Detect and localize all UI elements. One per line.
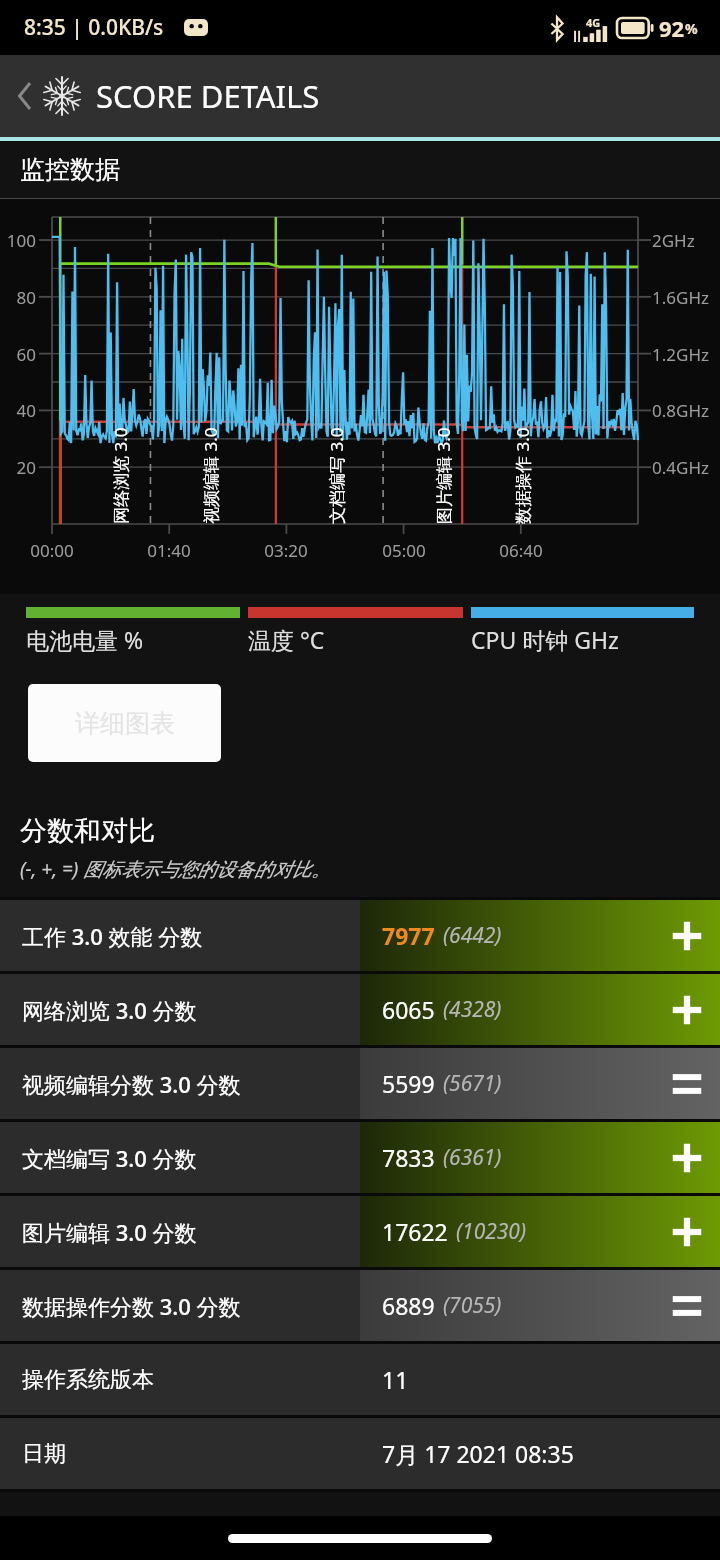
- staticText: 温度 °C: [248, 624, 471, 655]
- staticText: (4328): [443, 995, 502, 1024]
- staticText: 操作系统版本: [22, 1366, 154, 1394]
- staticText: 03:20: [256, 539, 316, 562]
- staticText: 分数和对比: [20, 814, 155, 848]
- staticText: 2GHz: [652, 229, 695, 252]
- staticText: 图片编辑 3.0 分数: [22, 1217, 197, 1247]
- staticText: 电池电量 %: [26, 624, 248, 655]
- staticText: 7977: [382, 920, 435, 951]
- staticText: CPU 时钟 GHz: [471, 624, 694, 655]
- staticText: 7月 17 2021 08:35: [382, 1438, 574, 1469]
- staticText: 文档编写 3.0 分数: [22, 1143, 197, 1173]
- staticText: 60: [0, 343, 36, 366]
- button[interactable]: 图片编辑 3.0 分数: [0, 1196, 720, 1270]
- button[interactable]: 视频编辑分数 3.0 分数: [0, 1048, 720, 1122]
- staticText: 0.8GHz: [652, 399, 709, 422]
- staticText: 05:00: [374, 539, 434, 562]
- staticText: 视频编辑 3.0: [199, 427, 222, 524]
- staticText: 8:35 | 0.0KB/s: [24, 13, 164, 42]
- staticText: 6065: [382, 994, 435, 1025]
- staticText: 日期: [22, 1440, 66, 1468]
- staticText: (6442): [443, 921, 502, 950]
- button[interactable]: 日期: [0, 1418, 720, 1492]
- staticText: 网络浏览 3.0 分数: [22, 995, 197, 1025]
- staticText: 图片编辑 3.0: [432, 427, 455, 524]
- staticText: 监控数据: [20, 154, 120, 185]
- staticText: (6361): [443, 1143, 502, 1172]
- staticText: 17622: [382, 1216, 448, 1247]
- staticText: 数据操作 3.0: [511, 427, 534, 524]
- staticText: 1.2GHz: [652, 343, 709, 366]
- staticText: 6889: [382, 1290, 435, 1321]
- staticText: 1.6GHz: [652, 286, 709, 309]
- staticText: 视频编辑分数 3.0 分数: [22, 1069, 241, 1099]
- staticText: 11: [382, 1364, 409, 1395]
- button[interactable]: 详细图表: [28, 684, 221, 762]
- staticText: 06:40: [491, 539, 551, 562]
- staticText: 详细图表: [75, 708, 175, 739]
- staticText: 网络浏览 3.0: [109, 427, 132, 524]
- button[interactable]: 工作 3.0 效能 分数: [0, 900, 720, 974]
- staticText: (5671): [443, 1069, 502, 1098]
- staticText: 7833: [382, 1142, 435, 1173]
- button[interactable]: 文档编写 3.0 分数: [0, 1122, 720, 1196]
- staticText: 01:40: [139, 539, 199, 562]
- staticText: 文档编写 3.0: [325, 427, 348, 524]
- button[interactable]: Back: [8, 79, 42, 113]
- staticText: 数据操作分数 3.0 分数: [22, 1291, 241, 1321]
- staticText: 00:00: [22, 539, 82, 562]
- staticText: (10230): [456, 1217, 527, 1246]
- staticText: 0.4GHz: [652, 456, 709, 479]
- staticText: (7055): [443, 1291, 502, 1320]
- staticText: 92: [659, 13, 685, 43]
- button[interactable]: 操作系统版本: [0, 1344, 720, 1418]
- staticText: 100: [0, 229, 36, 252]
- staticText: 工作 3.0 效能 分数: [22, 921, 203, 951]
- staticText: 80: [0, 286, 36, 309]
- staticText: 4G: [586, 15, 601, 30]
- staticText: 40: [0, 399, 36, 422]
- button[interactable]: 网络浏览 3.0 分数: [0, 974, 720, 1048]
- staticText: %: [685, 19, 698, 38]
- staticText: 5599: [382, 1068, 435, 1099]
- staticText: 20: [0, 456, 36, 479]
- staticText: SCORE DETAILS: [96, 75, 320, 117]
- staticText: (-, +, =) 图标表示与您的设备的对比。: [20, 856, 331, 882]
- button[interactable]: 数据操作分数 3.0 分数: [0, 1270, 720, 1344]
